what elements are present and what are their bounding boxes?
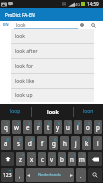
button[interactable]: f (37, 136, 47, 150)
button[interactable]: loon (74, 104, 103, 119)
button[interactable]: Clear text (78, 21, 86, 29)
staticText: w (14, 123, 19, 131)
button[interactable]: r (34, 120, 42, 134)
staticText: k (85, 139, 89, 147)
button[interactable]: j (71, 136, 80, 150)
staticText: loon (83, 108, 94, 115)
staticText: q (4, 123, 8, 131)
button[interactable]: x (27, 152, 36, 166)
button[interactable]: look for (11, 59, 94, 73)
staticText: 0 (98, 121, 101, 126)
staticText: look (16, 22, 26, 29)
button[interactable]: i (74, 120, 82, 134)
staticText: 123 (3, 172, 12, 179)
button[interactable]: l (93, 136, 102, 150)
staticText: j (75, 139, 77, 147)
staticText: EN (3, 22, 9, 28)
staticText: v (50, 155, 54, 163)
button[interactable]: u (64, 120, 72, 134)
staticText: look up (15, 92, 33, 99)
button[interactable]: t (44, 120, 52, 134)
button[interactable]: look (32, 104, 73, 119)
staticText: ) (99, 137, 101, 142)
staticText: . (80, 172, 82, 179)
staticText: look (47, 108, 59, 115)
button[interactable]: . (76, 168, 86, 182)
staticText: loop (10, 108, 21, 115)
staticText: d (28, 139, 32, 147)
staticText: n (70, 155, 74, 163)
staticText: 5 (48, 121, 51, 126)
staticText: 4G (75, 2, 81, 7)
staticText: @ (6, 137, 10, 142)
staticText: look after (15, 48, 38, 55)
staticText: y (56, 123, 60, 131)
staticText: 2 (17, 121, 20, 126)
button[interactable]: 123 (1, 168, 13, 182)
staticText: i (77, 123, 79, 131)
button[interactable]: look like (11, 74, 94, 88)
button[interactable]: s (13, 136, 23, 150)
staticText: l (97, 139, 99, 147)
button[interactable]: a (1, 136, 11, 150)
staticText: 7 (68, 121, 71, 126)
button[interactable]: Space (26, 168, 74, 182)
staticText: p (96, 123, 100, 131)
staticText: ProDict FA-EN (5, 12, 35, 18)
button[interactable]: g (49, 136, 58, 150)
button[interactable]: , (15, 168, 24, 182)
staticText: c (41, 155, 44, 163)
button[interactable]: look (11, 29, 94, 43)
staticText: 14:59 (87, 1, 99, 7)
button[interactable]: m (78, 152, 86, 166)
staticText: : (54, 153, 55, 158)
staticText: z (19, 155, 22, 163)
staticText: 9 (88, 121, 91, 126)
button[interactable]: look up (11, 89, 94, 102)
button[interactable]: z (16, 152, 25, 166)
button[interactable]: q (1, 120, 10, 134)
staticText: _ (44, 137, 46, 142)
staticText: f (41, 139, 44, 147)
button[interactable]: Backspace (88, 152, 102, 166)
staticText: ; (64, 153, 65, 158)
staticText: 8 (78, 121, 81, 126)
staticText: e (26, 123, 30, 131)
button[interactable]: EN (3, 21, 9, 29)
button[interactable]: y (54, 120, 62, 134)
staticText: g (52, 139, 56, 147)
button[interactable]: w (12, 120, 21, 134)
button[interactable]: d (25, 136, 35, 150)
button[interactable]: Search (89, 21, 97, 29)
staticText: look (15, 33, 26, 40)
button[interactable]: p (94, 120, 102, 134)
staticText: 1 (6, 121, 9, 126)
button[interactable]: loop (0, 104, 31, 119)
staticText: look for (15, 63, 34, 70)
button[interactable]: k (82, 136, 91, 150)
staticText: 6 (58, 121, 61, 126)
staticText: + (76, 137, 79, 142)
button[interactable]: c (38, 152, 46, 166)
staticText: u (66, 123, 70, 131)
staticText: - (66, 137, 68, 142)
staticText: look like (15, 78, 35, 85)
button[interactable]: v (48, 152, 56, 166)
staticText: " (33, 153, 35, 158)
button[interactable]: look (14, 21, 78, 29)
button[interactable]: o (84, 120, 92, 134)
staticText: h (63, 139, 67, 147)
staticText: , (19, 172, 21, 179)
button[interactable]: n (68, 152, 76, 166)
button[interactable]: Shift (1, 152, 14, 166)
staticText: m (79, 155, 85, 163)
button[interactable]: Search (88, 168, 102, 182)
button[interactable]: b (58, 152, 66, 166)
staticText: * (22, 153, 24, 158)
staticText: t (47, 123, 50, 131)
staticText: ? (83, 153, 85, 158)
staticText: ! (74, 153, 75, 158)
button[interactable]: h (60, 136, 69, 150)
button[interactable]: look after (11, 44, 94, 58)
button[interactable]: e (23, 120, 32, 134)
